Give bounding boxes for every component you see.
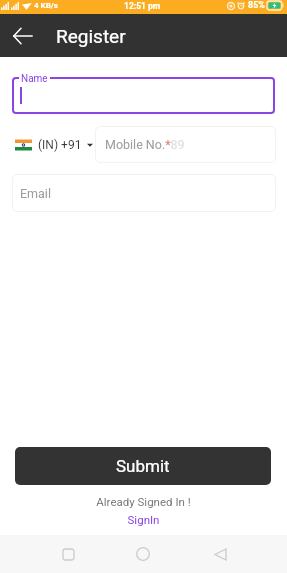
- staticText: 4 KB/s: [34, 1, 58, 10]
- button[interactable]: Back: [200, 535, 240, 573]
- button[interactable]: Back: [3, 14, 43, 57]
- staticText: Email: [20, 186, 51, 201]
- button[interactable]: (IN) +91: [12, 126, 95, 163]
- staticText: 12:51 pm: [124, 1, 161, 11]
- staticText: 85%: [248, 0, 265, 11]
- staticText: Already Signed In !: [0, 495, 287, 508]
- button[interactable]: Submit: [15, 447, 271, 485]
- button[interactable]: SignIn: [0, 513, 287, 526]
- button[interactable]: Mobile No.*89: [95, 126, 276, 163]
- button[interactable]: Recent apps: [48, 535, 88, 573]
- staticText: Submit: [116, 456, 170, 476]
- button[interactable]: Email: [12, 174, 276, 212]
- button[interactable]: Home: [123, 535, 163, 573]
- button[interactable]: [12, 77, 275, 114]
- staticText: Name: [21, 73, 48, 85]
- staticText: (IN) +91: [38, 138, 82, 152]
- staticText: Register: [56, 25, 126, 47]
- staticText: Mobile No.*89: [105, 137, 185, 152]
